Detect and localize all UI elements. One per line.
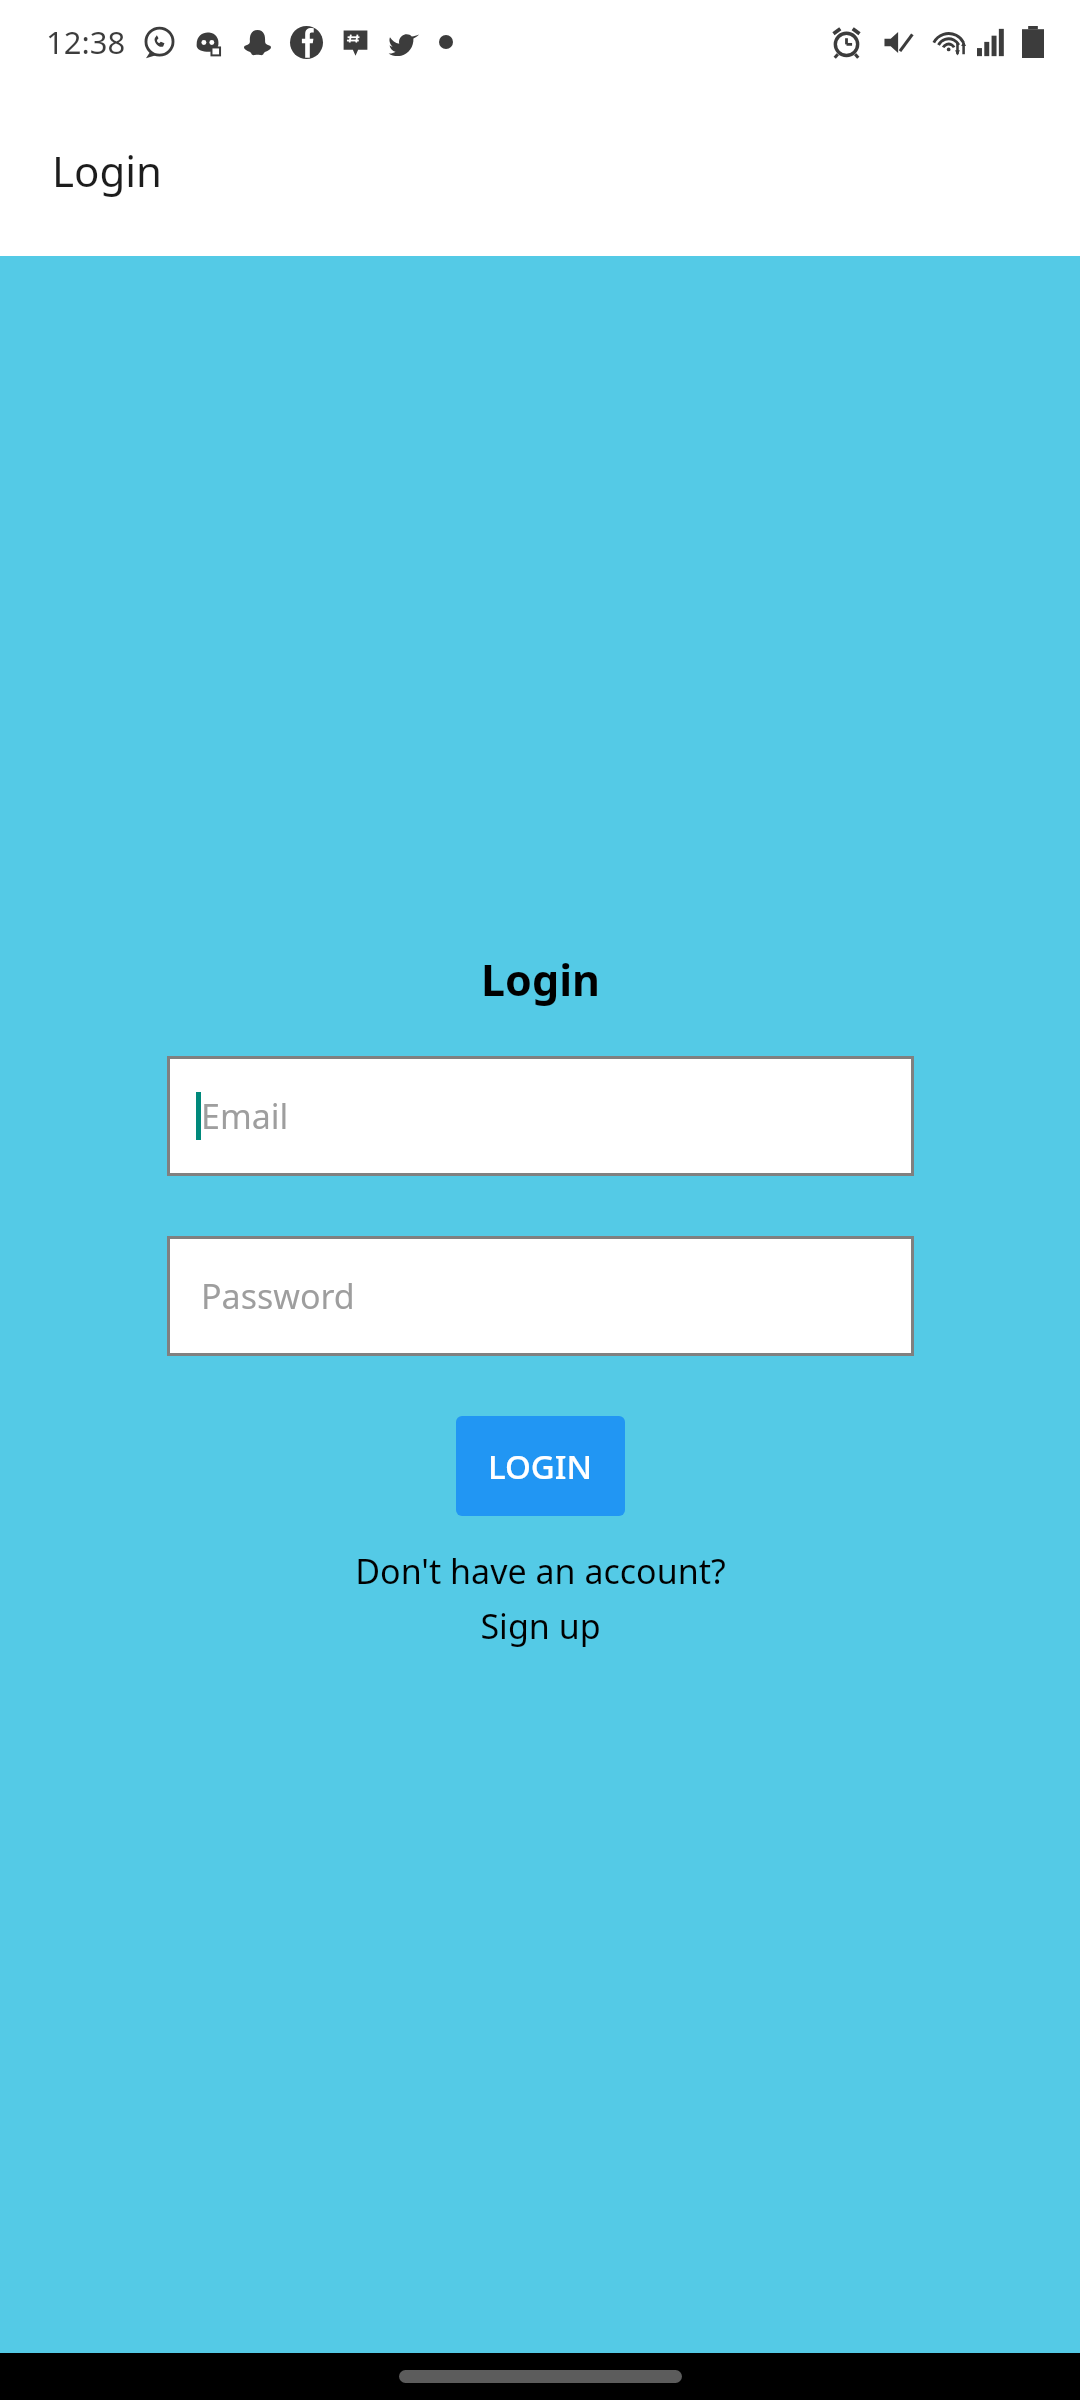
staticText: Email (201, 1093, 289, 1139)
staticText: Login (52, 142, 163, 199)
staticText: 12:38 (46, 21, 126, 63)
staticText: LOGIN (488, 1444, 593, 1489)
button[interactable]: Don't have an account? (355, 1548, 726, 1594)
button[interactable]: Email (167, 1056, 914, 1176)
button[interactable]: LOGIN (456, 1416, 625, 1516)
button[interactable]: Sign up (480, 1603, 601, 1649)
staticText: Password (201, 1273, 355, 1319)
staticText: Login (481, 950, 600, 1009)
button[interactable]: Password (167, 1236, 914, 1356)
